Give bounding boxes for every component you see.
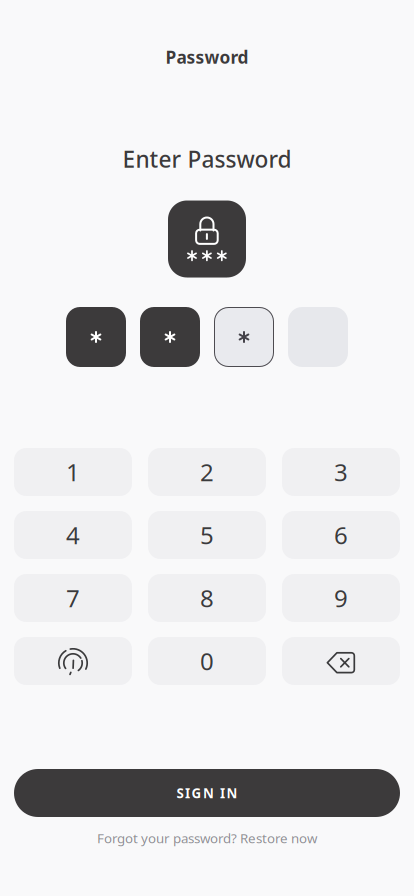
button[interactable]: 5 [148, 511, 266, 559]
staticText: 6 [334, 519, 348, 551]
staticText: 8 [200, 582, 214, 614]
staticText: SIGN IN [176, 784, 237, 802]
staticText: 7 [66, 582, 80, 614]
staticText: 4 [66, 519, 80, 551]
button[interactable]: Sign in with Touch ID [14, 637, 132, 685]
button[interactable]: Delete [282, 637, 400, 685]
button[interactable]: SIGN IN [14, 769, 400, 817]
button[interactable]: 8 [148, 574, 266, 622]
button[interactable]: Password [165, 45, 248, 68]
staticText: 2 [200, 456, 214, 488]
staticText: 0 [200, 645, 214, 677]
button[interactable]: 9 [282, 574, 400, 622]
button[interactable]: 7 [14, 574, 132, 622]
staticText: 1 [66, 456, 80, 488]
button[interactable]: 4 [14, 511, 132, 559]
button[interactable]: Forgot your password? Restore now [97, 829, 317, 847]
staticText: Forgot your password? Restore now [97, 829, 317, 847]
staticText: 9 [334, 582, 348, 614]
button[interactable]: 0 [148, 637, 266, 685]
button[interactable]: 3 [282, 448, 400, 496]
staticText: Password [165, 45, 248, 68]
staticText: Enter Password [122, 144, 291, 174]
button[interactable]: 1 [14, 448, 132, 496]
button[interactable]: 2 [148, 448, 266, 496]
button[interactable]: 6 [282, 511, 400, 559]
staticText: 5 [200, 519, 214, 551]
staticText: 3 [334, 456, 348, 488]
